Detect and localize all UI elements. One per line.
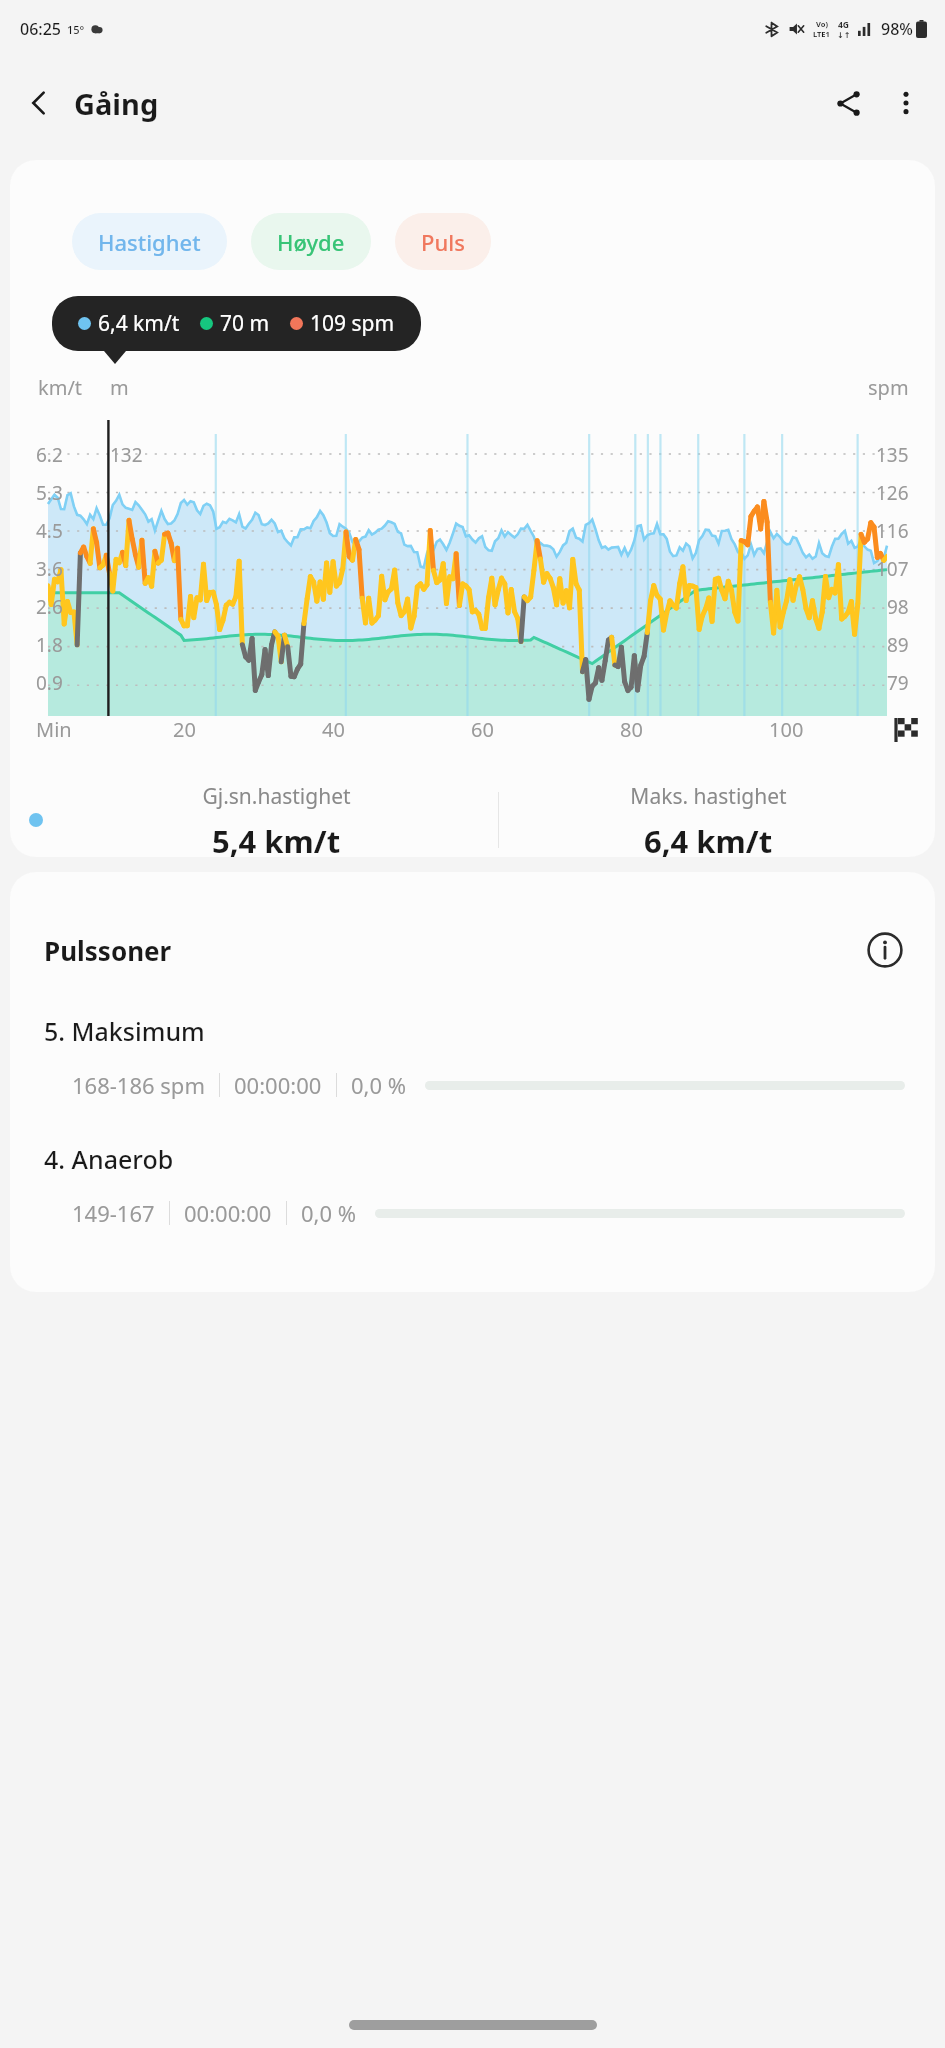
- staticText: Maks. hastighet: [630, 782, 787, 811]
- staticText: 5.3: [36, 480, 63, 506]
- staticText: 0,0 %: [351, 1070, 407, 1100]
- staticText: Høyde: [277, 227, 345, 257]
- button[interactable]: 4. Anaerob: [10, 1142, 935, 1228]
- staticText: 6,4 km/t: [644, 820, 773, 857]
- staticText: 0.9: [36, 670, 63, 696]
- staticText: 6.2: [36, 442, 63, 468]
- staticText: 107: [876, 556, 909, 582]
- staticText: 98: [887, 594, 909, 620]
- staticText: 80: [620, 716, 643, 743]
- button[interactable]: 5. Maksimum: [10, 1014, 935, 1100]
- button[interactable]: Share: [819, 74, 877, 132]
- staticText: m: [110, 374, 129, 401]
- staticText: 2.6: [36, 594, 63, 620]
- staticText: 00:00:00: [184, 1198, 272, 1228]
- staticText: 3.6: [36, 556, 63, 582]
- staticText: 126: [876, 480, 909, 506]
- staticText: 60: [471, 716, 494, 743]
- staticText: 15°: [67, 22, 85, 37]
- staticText: Vo): [816, 19, 828, 29]
- staticText: Hastighet: [98, 227, 201, 257]
- staticText: Gj.sn.hastighet: [202, 782, 351, 811]
- staticText: 40: [322, 716, 345, 743]
- staticText: 89: [887, 632, 909, 658]
- staticText: 00:00:00: [234, 1070, 322, 1100]
- staticText: 4.5: [36, 518, 63, 544]
- staticText: LTE1: [813, 29, 830, 39]
- button[interactable]: Back: [10, 74, 68, 132]
- button[interactable]: Høyde: [251, 213, 371, 270]
- button[interactable]: Info about heart rate zones: [861, 926, 909, 974]
- staticText: km/t: [38, 374, 83, 401]
- button[interactable]: More options: [877, 74, 935, 132]
- staticText: Puls: [421, 227, 465, 257]
- staticText: 109 spm: [310, 309, 395, 338]
- staticText: 70 m: [220, 309, 270, 338]
- staticText: 168-186 spm: [72, 1070, 205, 1100]
- staticText: 20: [173, 716, 196, 743]
- staticText: 100: [769, 716, 804, 743]
- staticText: 98%: [881, 18, 913, 40]
- staticText: 4. Anaerob: [44, 1142, 174, 1176]
- staticText: 6,4 km/t: [98, 309, 180, 338]
- staticText: Min: [36, 716, 72, 743]
- button[interactable]: Hastighet: [72, 213, 227, 270]
- staticText: 79: [887, 670, 909, 696]
- staticText: Gåing: [74, 84, 159, 123]
- staticText: 5. Maksimum: [44, 1014, 205, 1048]
- staticText: 135: [876, 442, 909, 468]
- button[interactable]: Puls: [395, 213, 491, 270]
- staticText: 4G: [838, 19, 850, 31]
- staticText: 116: [876, 518, 909, 544]
- staticText: 1.8: [36, 632, 63, 658]
- staticText: ↓↑: [837, 31, 851, 40]
- staticText: 0,0 %: [301, 1198, 357, 1228]
- staticText: 06:25: [20, 18, 61, 40]
- staticText: 132: [110, 442, 143, 468]
- staticText: 5,4 km/t: [212, 820, 341, 857]
- staticText: 149-167: [72, 1198, 155, 1228]
- staticText: Pulssoner: [44, 933, 172, 968]
- staticText: spm: [868, 374, 909, 401]
